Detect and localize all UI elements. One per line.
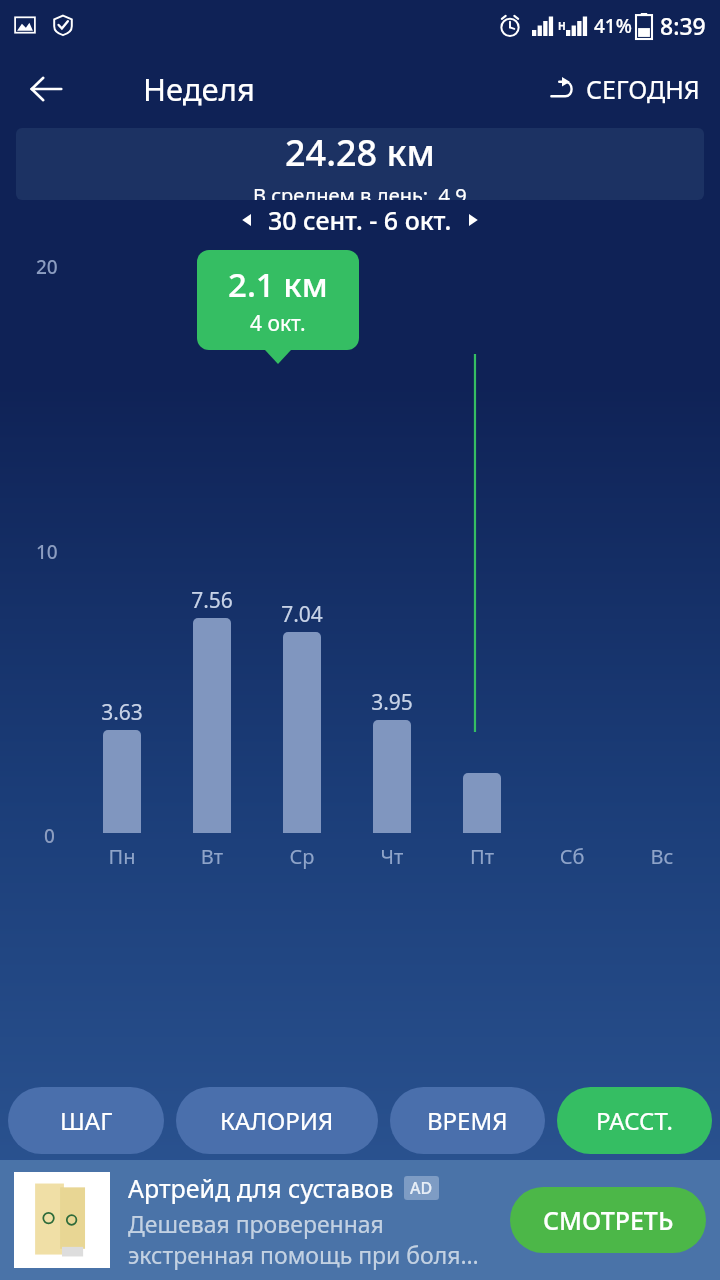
button[interactable]: Previous week — [226, 200, 268, 240]
staticText: СМОТРЕТЬ — [543, 1203, 674, 1237]
staticText: Вс — [641, 843, 683, 870]
staticText: Чт — [371, 843, 413, 870]
staticText: 0 — [44, 823, 55, 849]
staticText: 4 окт. — [250, 309, 306, 338]
button[interactable]: ШАГ — [8, 1087, 164, 1154]
staticText: Пн — [101, 843, 143, 870]
staticText: СЕГОДНЯ — [586, 72, 700, 106]
staticText: РАССТ. — [596, 1104, 673, 1137]
staticText: Сб — [551, 843, 593, 870]
staticText: 20 — [36, 254, 58, 280]
button[interactable]: СЕГОДНЯ — [542, 64, 706, 114]
staticText: Вт — [191, 843, 233, 870]
staticText: 3.95 — [371, 688, 413, 717]
staticText: 41% — [594, 13, 632, 39]
staticText: 7.56 — [191, 586, 233, 615]
button[interactable]: Next week — [452, 200, 494, 240]
staticText: AD — [410, 1177, 433, 1199]
staticText: КАЛОРИЯ — [220, 1104, 334, 1137]
staticText: 3.63 — [101, 698, 143, 727]
staticText: 24.28 км — [285, 128, 435, 177]
staticText: ШАГ — [60, 1104, 113, 1137]
staticText: Неделя — [143, 68, 255, 110]
button[interactable]: КАЛОРИЯ — [176, 1087, 378, 1154]
button[interactable]: Артрейд для суставов — [0, 1160, 720, 1280]
staticText: 8:39 — [660, 10, 706, 41]
staticText: 30 сент. - 6 окт. — [268, 203, 452, 237]
button[interactable]: СМОТРЕТЬ — [510, 1187, 706, 1253]
staticText: 7.04 — [281, 600, 323, 629]
button[interactable]: 24.28 км — [16, 128, 704, 200]
staticText: В среднем в день: 4.9 — [253, 182, 467, 200]
button[interactable]: ВРЕМЯ — [390, 1087, 545, 1154]
staticText: ВРЕМЯ — [427, 1104, 508, 1137]
staticText: Пт — [461, 843, 503, 870]
button[interactable]: РАССТ. — [557, 1087, 712, 1154]
staticText: экстренная помощь при боля… — [128, 1239, 479, 1270]
staticText: 10 — [36, 539, 58, 565]
staticText: Ср — [281, 843, 323, 870]
staticText: Дешевая проверенная — [128, 1208, 384, 1239]
staticText: 2.1 км — [228, 262, 328, 307]
button[interactable]: 2.1 км — [197, 250, 359, 350]
staticText: Артрейд для суставов — [128, 1171, 394, 1205]
button[interactable]: Back — [20, 63, 72, 115]
staticText: H — [558, 19, 566, 33]
